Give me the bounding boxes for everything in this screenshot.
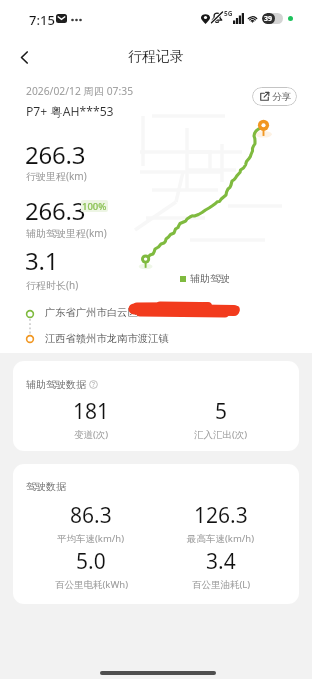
- staticText: 7:15: [29, 11, 55, 29]
- staticText: 江西省赣州市龙南市渡江镇: [45, 332, 169, 345]
- staticText: 266.3: [25, 194, 86, 227]
- staticText: 辅助驾驶: [190, 272, 230, 285]
- staticText: 126.3: [194, 501, 248, 530]
- staticText: 分享: [272, 91, 292, 103]
- staticText: 变道(次): [74, 428, 109, 441]
- staticText: 2026/02/12 周四 07:35: [26, 84, 134, 98]
- staticText: 行程记录: [128, 48, 184, 66]
- staticText: 3.4: [206, 547, 236, 576]
- staticText: 181: [73, 397, 110, 426]
- staticText: 5: [215, 397, 228, 426]
- staticText: 行驶里程(km): [26, 169, 87, 183]
- staticText: 5G: [224, 9, 233, 18]
- button[interactable]: 返回: [9, 42, 39, 72]
- staticText: 驾驶数据: [26, 480, 66, 493]
- staticText: 86.3: [70, 501, 112, 530]
- staticText: 广东省广州市白云区: [45, 306, 138, 319]
- staticText: 汇入汇出(次): [194, 428, 248, 441]
- staticText: 3.1: [25, 244, 59, 277]
- button[interactable]: 分享: [252, 87, 297, 106]
- staticText: 39: [264, 14, 273, 24]
- staticText: 最高车速(km/h): [187, 532, 255, 545]
- staticText: 百公里油耗(L): [192, 578, 251, 591]
- staticText: 平均车速(km/h): [57, 532, 125, 545]
- staticText: 100%: [82, 200, 107, 212]
- staticText: P7+ 粤AH***53: [26, 103, 114, 120]
- staticText: 辅助驾驶里程(km): [26, 226, 107, 240]
- staticText: 行程时长(h): [26, 278, 79, 292]
- staticText: 百公里电耗(kWh): [55, 578, 128, 591]
- staticText: 5.0: [76, 547, 106, 576]
- staticText: ?: [92, 380, 95, 389]
- staticText: 辅助驾驶数据: [26, 378, 86, 391]
- staticText: 266.3: [25, 138, 86, 171]
